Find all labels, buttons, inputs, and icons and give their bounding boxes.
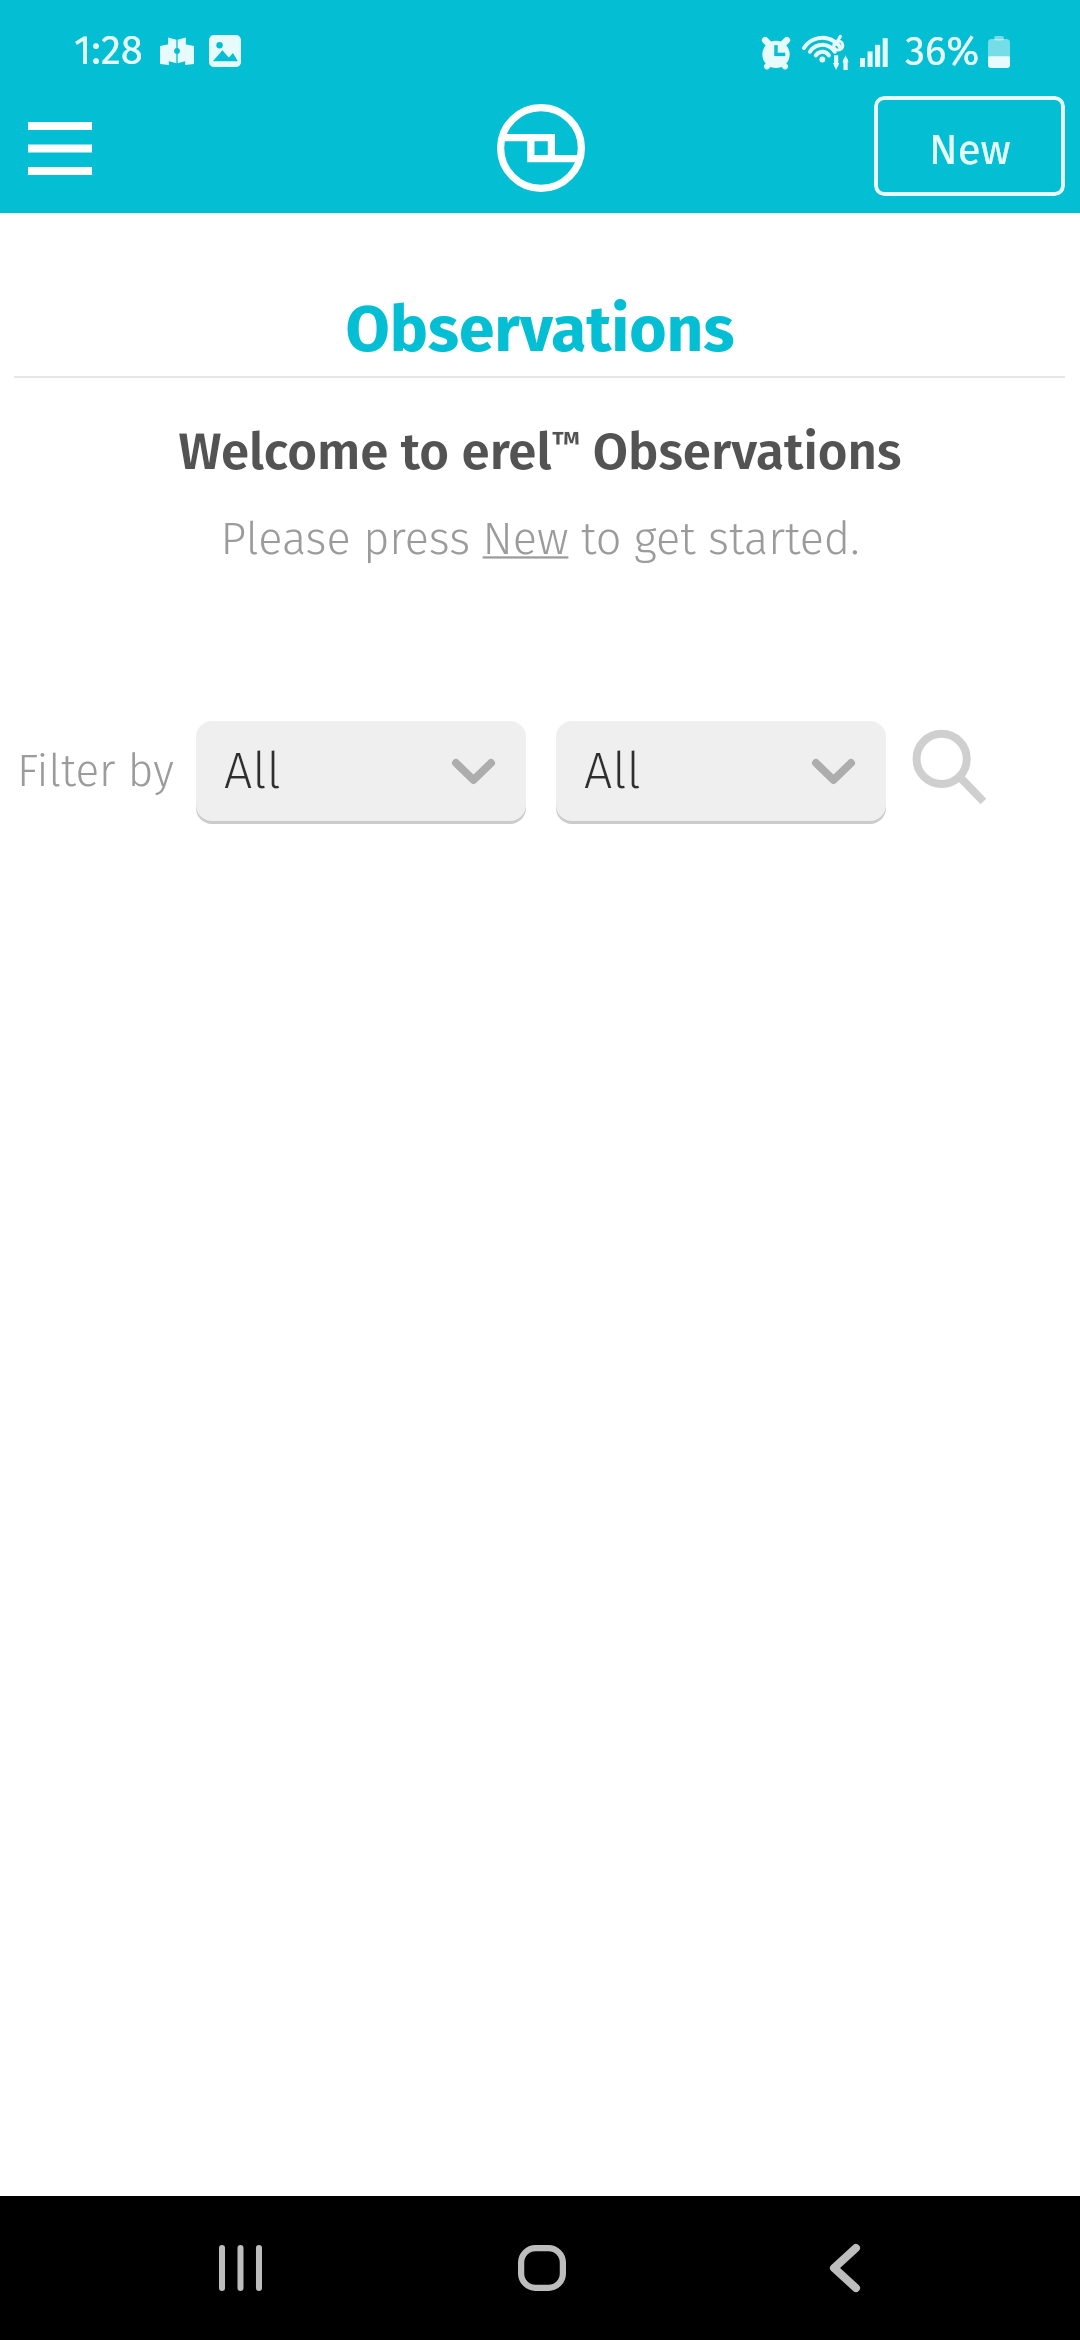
button[interactable]: Search xyxy=(898,716,1002,820)
button[interactable]: All xyxy=(556,721,886,821)
button[interactable]: All xyxy=(196,721,526,821)
staticText: New xyxy=(929,125,1011,175)
button[interactable]: Back xyxy=(755,2196,935,2340)
staticText: Please press New to get started. xyxy=(0,512,1080,566)
staticText: Observations xyxy=(0,291,1080,368)
button[interactable]: Home xyxy=(452,2196,632,2340)
staticText: Welcome to erel™ Observations xyxy=(0,421,1080,482)
staticText: 1:28 xyxy=(74,27,143,75)
staticText: All xyxy=(224,741,281,801)
staticText: All xyxy=(584,741,641,801)
staticText: Filter by xyxy=(17,745,174,798)
button[interactable]: Recent apps xyxy=(150,2196,330,2340)
staticText: 36% xyxy=(905,28,980,76)
button[interactable]: New xyxy=(874,96,1065,196)
button[interactable]: Open navigation menu xyxy=(0,92,120,205)
